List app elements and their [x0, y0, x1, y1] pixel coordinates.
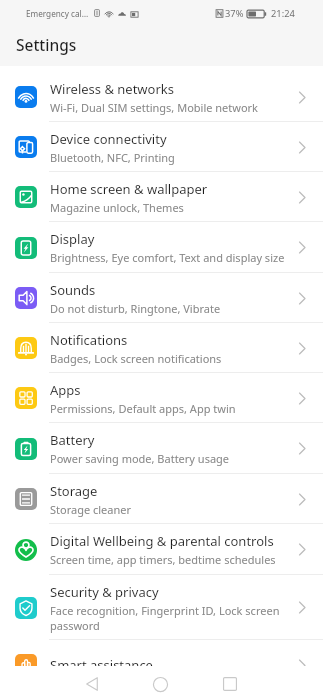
- button[interactable]: Digital Wellbeing & parental controls: [0, 524, 323, 575]
- staticText: Permissions, Default apps, App twin: [50, 401, 236, 416]
- button[interactable]: Home screen & wallpaper: [0, 172, 323, 222]
- button[interactable]: Device connectivity: [0, 122, 323, 172]
- staticText: Smart assistance: [50, 656, 153, 674]
- staticText: 37%: [225, 7, 244, 20]
- staticText: Wi-Fi, Dual SIM settings, Mobile network: [50, 100, 258, 115]
- staticText: Security & privacy: [50, 583, 159, 601]
- button[interactable]: Recents: [212, 666, 247, 700]
- staticText: Do not disturb, Ringtone, Vibrate: [50, 301, 221, 316]
- staticText: 21:24: [271, 7, 295, 20]
- staticText: Display: [50, 230, 95, 248]
- button[interactable]: Security & privacy: [0, 575, 323, 640]
- staticText: Power saving mode, Battery usage: [50, 451, 230, 466]
- staticText: Wireless & networks: [50, 80, 174, 98]
- staticText: Magazine unlock, Themes: [50, 200, 184, 215]
- button[interactable]: Sounds: [0, 273, 323, 323]
- staticText: Face recognition, Fingerprint ID, Lock s…: [50, 603, 289, 633]
- button[interactable]: Back: [74, 666, 109, 700]
- button[interactable]: Battery: [0, 423, 323, 474]
- staticText: Home screen & wallpaper: [50, 180, 208, 198]
- staticText: Sounds: [50, 281, 96, 299]
- staticText: Emergency cal…: [26, 8, 89, 19]
- button[interactable]: Home: [143, 666, 178, 700]
- button[interactable]: Storage: [0, 474, 323, 524]
- staticText: Settings: [16, 34, 77, 55]
- staticText: Storage cleaner: [50, 502, 132, 517]
- staticText: Apps: [50, 381, 81, 399]
- staticText: Bluetooth, NFC, Printing: [50, 150, 175, 165]
- button[interactable]: Smart assistance: [0, 640, 323, 690]
- staticText: Battery: [50, 431, 95, 449]
- staticText: Screen time, app timers, bedtime schedul…: [50, 552, 276, 567]
- button[interactable]: Notifications: [0, 323, 323, 373]
- staticText: Badges, Lock screen notifications: [50, 351, 222, 366]
- button[interactable]: Apps: [0, 373, 323, 423]
- staticText: Notifications: [50, 331, 128, 349]
- staticText: Device connectivity: [50, 130, 167, 148]
- staticText: Digital Wellbeing & parental controls: [50, 532, 274, 550]
- staticText: Storage: [50, 482, 98, 500]
- staticText: Brightness, Eye comfort, Text and displa…: [50, 250, 285, 265]
- button[interactable]: Display: [0, 222, 323, 273]
- button[interactable]: Wireless & networks: [0, 72, 323, 122]
